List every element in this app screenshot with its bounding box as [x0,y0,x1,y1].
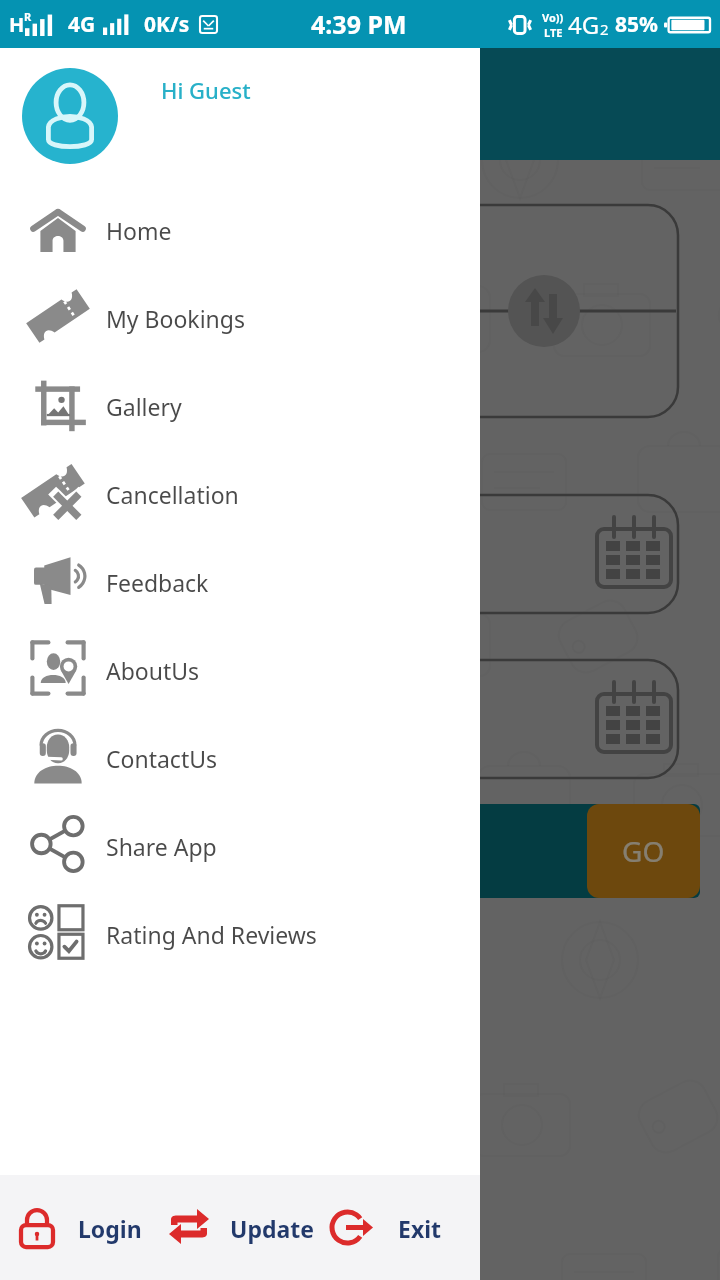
button[interactable]: GO [587,804,700,898]
button[interactable]: Profile picture [22,68,118,164]
button[interactable]: Hi Guest [161,75,251,105]
staticText: Exit [398,1213,442,1244]
button[interactable]: AboutUs [0,624,480,712]
staticText: Login [78,1213,142,1244]
staticText: Feedback [106,567,209,598]
button[interactable]: Gallery [0,360,480,448]
staticText: Hi Guest [161,75,251,105]
staticText: 2 [600,19,609,39]
button[interactable]: Rating And Reviews [0,888,480,976]
staticText: 0K/s [144,10,190,39]
staticText: Rating And Reviews [106,919,317,950]
staticText: 4G [568,8,600,41]
staticText: ContactUs [106,743,218,774]
staticText: 4G [68,10,96,39]
staticText: R [24,9,32,24]
staticText: 4:39 PM [311,7,407,41]
button[interactable]: Feedback [0,536,480,624]
staticText: LTE [544,25,563,40]
staticText: H [9,11,25,38]
button[interactable]: Home [0,184,480,272]
staticText: Vo)) [542,10,564,25]
staticText: Cancellation [106,479,239,510]
button[interactable]: ContactUs [0,712,480,800]
staticText: Home [106,215,172,246]
staticText: My Bookings [106,303,245,334]
button[interactable]: Login [0,1203,142,1253]
button[interactable]: My Bookings [0,272,480,360]
button[interactable]: Exit [314,1203,442,1253]
button[interactable]: Share App [0,800,480,888]
staticText: Share App [106,831,217,862]
staticText: GO [622,832,665,870]
staticText: 85% [615,10,658,39]
staticText: Gallery [106,391,182,422]
button[interactable]: Update [142,1203,314,1253]
staticText: AboutUs [106,655,200,686]
button[interactable]: Swap source and destination [508,275,580,347]
staticText: Update [230,1213,314,1244]
button[interactable]: Cancellation [0,448,480,536]
